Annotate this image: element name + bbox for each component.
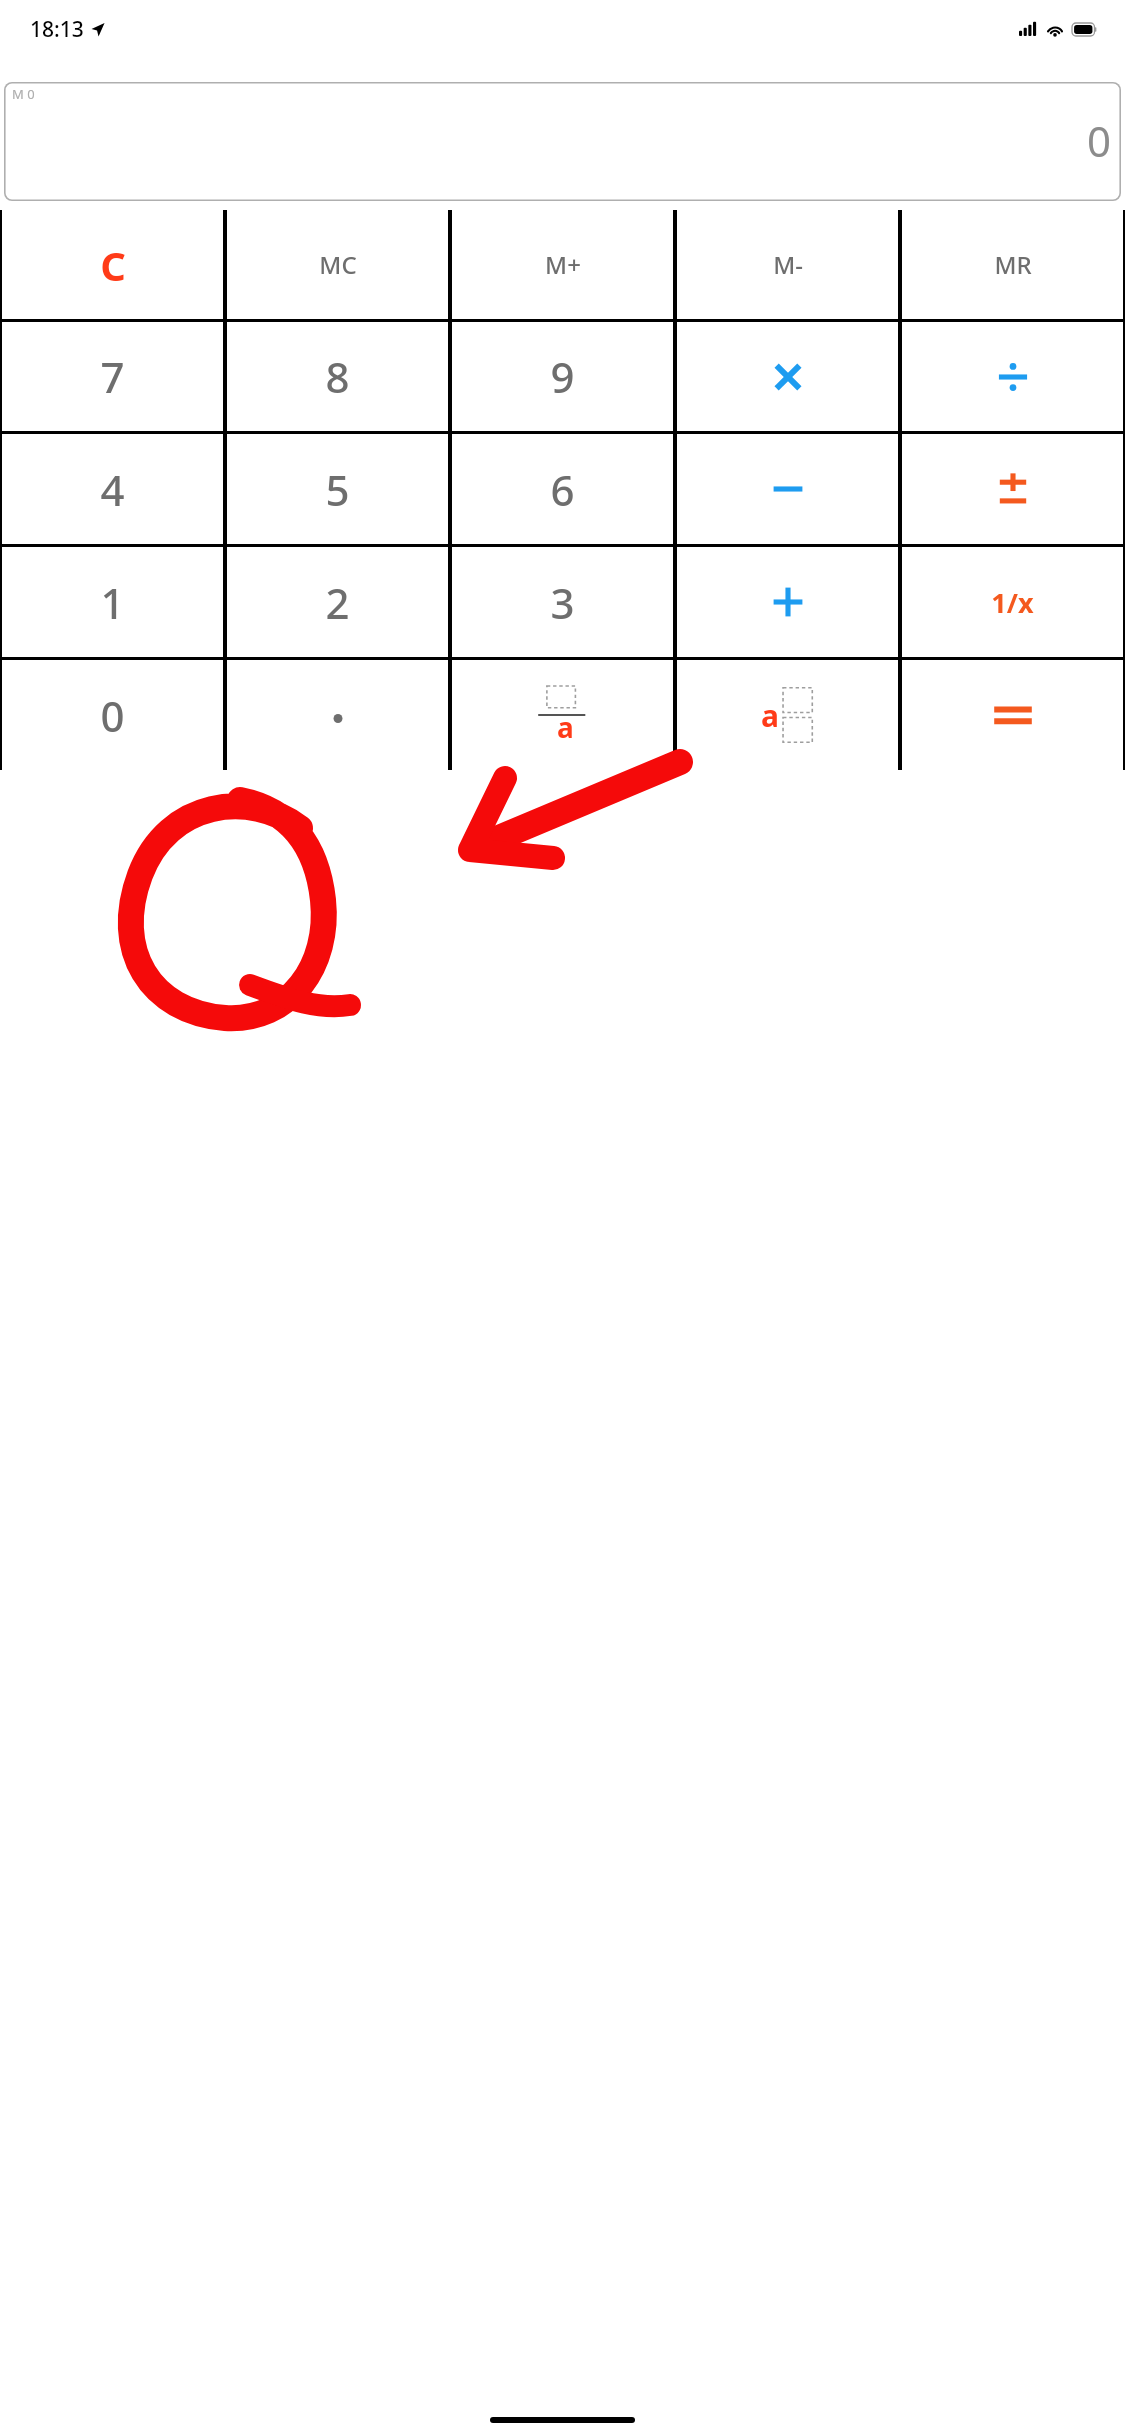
button[interactable]: Divide xyxy=(902,322,1123,431)
button[interactable]: 6 xyxy=(452,434,673,544)
staticText: 7 xyxy=(100,348,125,405)
staticText: 0 xyxy=(1087,112,1112,169)
staticText: 0 xyxy=(100,687,125,744)
staticText: MR xyxy=(994,248,1032,281)
button[interactable]: Fraction xyxy=(452,660,673,770)
button[interactable]: 1/x xyxy=(902,547,1123,657)
button[interactable]: MC xyxy=(227,210,448,319)
other: Divide xyxy=(997,361,1029,393)
other: Equals xyxy=(993,703,1033,727)
staticText: M- xyxy=(773,248,803,281)
staticText: a xyxy=(557,708,574,746)
other: Multiply xyxy=(773,362,803,392)
button[interactable]: Equals xyxy=(902,660,1123,770)
button[interactable]: Plus minus xyxy=(902,434,1123,544)
button[interactable]: 2 xyxy=(227,547,448,657)
button[interactable]: M+ xyxy=(452,210,673,319)
staticText: 5 xyxy=(325,461,350,518)
button[interactable]: Decimal point xyxy=(227,660,448,770)
button[interactable]: Plus xyxy=(677,547,898,657)
button[interactable]: Mixed number xyxy=(677,660,898,770)
staticText: 2 xyxy=(325,574,350,631)
button[interactable]: M- xyxy=(677,210,898,319)
button[interactable]: Minus xyxy=(677,434,898,544)
staticText: M+ xyxy=(545,248,581,281)
button[interactable]: 0 xyxy=(2,660,223,770)
staticText: MC xyxy=(319,248,357,281)
button[interactable]: 3 xyxy=(452,547,673,657)
button[interactable]: 7 xyxy=(2,322,223,431)
staticText: 8 xyxy=(325,348,350,405)
button[interactable]: 1 xyxy=(2,547,223,657)
other: Minus xyxy=(772,473,804,505)
button[interactable]: 9 xyxy=(452,322,673,431)
button[interactable]: 5 xyxy=(227,434,448,544)
other: Mixed number xyxy=(761,680,815,750)
staticText: 4 xyxy=(100,461,125,518)
staticText: 1 xyxy=(100,574,125,631)
button[interactable]: M 0 xyxy=(4,82,1121,201)
staticText: a xyxy=(761,695,779,736)
staticText: 6 xyxy=(550,461,575,518)
other: Plus xyxy=(772,586,804,618)
button[interactable]: Multiply xyxy=(677,322,898,431)
staticText: C xyxy=(100,238,126,292)
button[interactable]: 8 xyxy=(227,322,448,431)
staticText: 18:13 xyxy=(30,15,84,44)
button[interactable]: C xyxy=(2,210,223,319)
staticText: 3 xyxy=(550,574,575,631)
button[interactable]: 4 xyxy=(2,434,223,544)
staticText: M 0 xyxy=(12,85,35,103)
button[interactable]: MR xyxy=(902,210,1123,319)
other: Decimal point xyxy=(330,707,346,723)
staticText: 9 xyxy=(550,348,575,405)
other: Fraction xyxy=(532,682,594,748)
other: Plus minus xyxy=(998,472,1028,506)
staticText: 1/x xyxy=(991,584,1034,621)
